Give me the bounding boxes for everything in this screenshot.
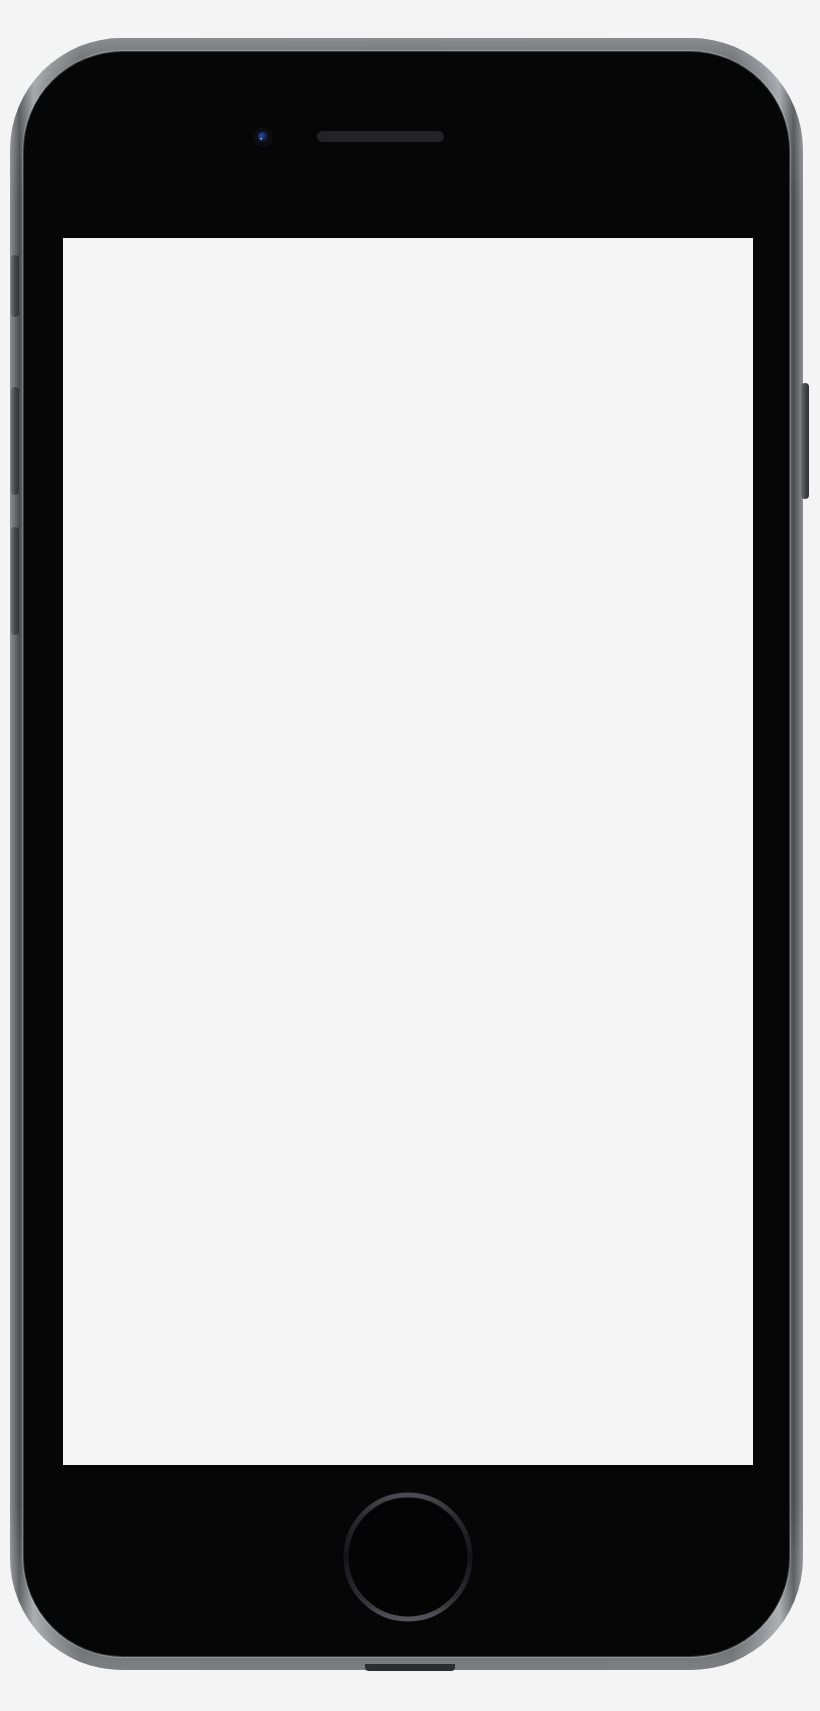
button[interactable]: Side button	[11, 387, 19, 495]
button[interactable]: Side button	[801, 383, 809, 499]
button[interactable]: Side button	[11, 255, 19, 317]
button[interactable]: Side button	[11, 527, 19, 635]
button[interactable]: Home	[346, 1495, 470, 1619]
